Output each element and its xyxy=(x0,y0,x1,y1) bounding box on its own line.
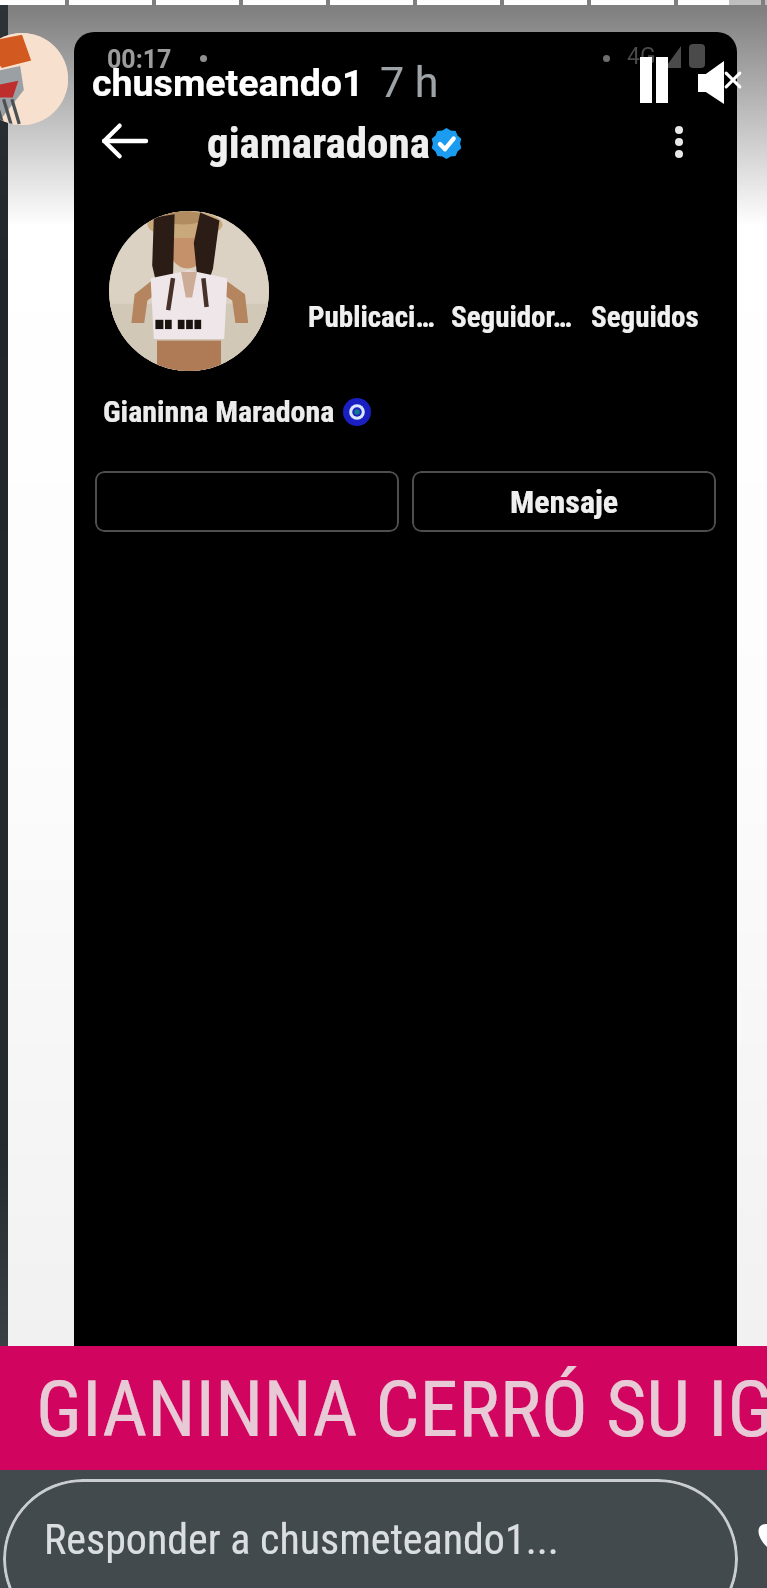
staticText: 4G xyxy=(627,43,656,70)
button[interactable]: Seguidor… xyxy=(451,300,572,334)
staticText: Mensaje xyxy=(510,483,619,521)
button[interactable]: giamaradona xyxy=(199,118,469,178)
button[interactable]: Profile picture xyxy=(109,211,269,371)
button[interactable]: Seguidos xyxy=(591,300,699,334)
staticText: Responder a chusmeteando1... xyxy=(44,1515,559,1564)
staticText: Publicaci… xyxy=(308,300,435,334)
staticText: giamaradona xyxy=(207,118,430,168)
staticText: Seguidos xyxy=(591,300,699,334)
button[interactable]: Pause story xyxy=(626,52,682,108)
button[interactable]: Back xyxy=(94,111,154,171)
staticText: chusmeteando1 xyxy=(92,61,364,105)
staticText: GIANINNA CERRÓ SU IG xyxy=(36,1364,767,1455)
button[interactable]: Message xyxy=(412,471,716,532)
button[interactable]: Follow xyxy=(95,471,399,532)
staticText: Seguidor… xyxy=(451,300,572,334)
button[interactable]: Publicaci… xyxy=(308,300,435,334)
button[interactable]: Responder a chusmeteando1... xyxy=(3,1479,738,1588)
button[interactable]: More options xyxy=(649,112,709,172)
other: Like xyxy=(752,1513,767,1559)
button[interactable]: chusmeteando1 profile picture xyxy=(0,33,68,125)
button[interactable]: Unmute xyxy=(690,52,750,110)
staticText: 7 h xyxy=(380,57,439,107)
staticText: Gianinna Maradona xyxy=(103,394,335,429)
staticText: 00:17 xyxy=(107,45,172,74)
button[interactable]: chusmeteando1 xyxy=(88,48,448,106)
